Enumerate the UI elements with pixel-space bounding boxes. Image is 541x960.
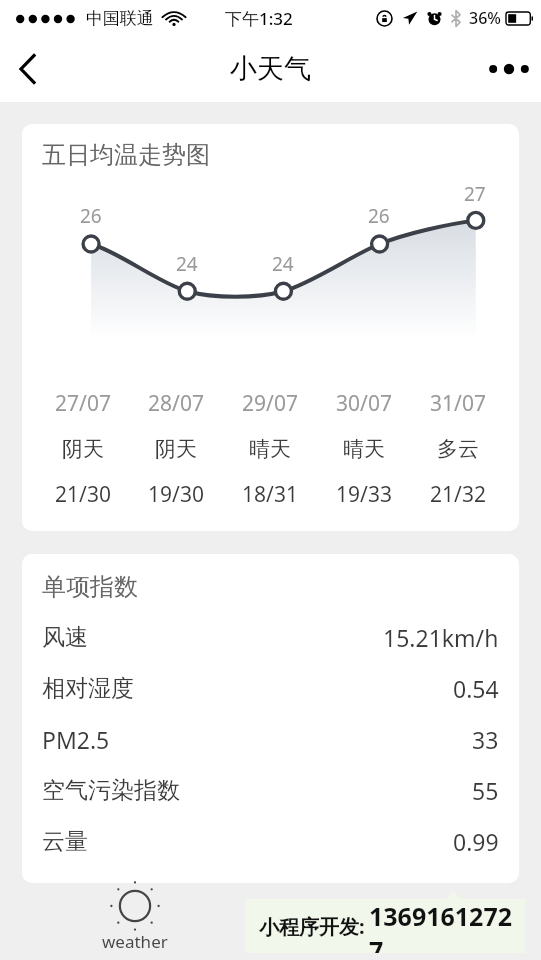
staticText: 30/07 xyxy=(336,389,392,418)
button[interactable]: 五日均温走势图 xyxy=(22,124,519,531)
button[interactable]: 相对湿度 xyxy=(22,663,519,714)
staticText: 26 xyxy=(80,203,102,229)
staticText: 27/07 xyxy=(55,389,111,418)
button[interactable]: PM2.5 xyxy=(22,714,519,765)
staticText: 五日均温走势图 xyxy=(42,140,210,170)
staticText: 晴天 xyxy=(249,436,291,462)
staticText: 55 xyxy=(472,775,499,806)
staticText: 29/07 xyxy=(242,389,298,418)
staticText: 21/32 xyxy=(430,480,486,509)
button[interactable]: 云量 xyxy=(22,816,519,867)
staticText: 小天气 xyxy=(230,52,311,86)
staticText: 空气污染指数 xyxy=(42,776,180,805)
staticText: 24 xyxy=(176,251,198,277)
staticText: 0.54 xyxy=(453,673,499,704)
staticText: 28/07 xyxy=(148,389,204,418)
staticText: 阴天 xyxy=(155,436,197,462)
staticText: 33 xyxy=(472,724,499,755)
staticText: 31/07 xyxy=(430,389,486,418)
staticText: 阴天 xyxy=(62,436,104,462)
staticText: 多云 xyxy=(437,436,479,462)
button[interactable]: 空气污染指数 xyxy=(22,765,519,816)
staticText: 21/30 xyxy=(55,480,111,509)
staticText: 19/33 xyxy=(336,480,392,509)
staticText: 15.21km/h xyxy=(383,622,499,653)
staticText: 24 xyxy=(272,251,294,277)
staticText: 下午1:32 xyxy=(225,7,293,30)
button[interactable]: More options xyxy=(477,37,541,101)
staticText: weather xyxy=(102,930,168,953)
staticText: 0.99 xyxy=(453,826,499,857)
staticText: 26 xyxy=(368,203,390,229)
button[interactable]: Back xyxy=(0,41,56,97)
staticText: 13691612727 xyxy=(369,899,525,953)
staticText: PM2.5 xyxy=(42,724,110,755)
staticText: 风速 xyxy=(42,623,88,652)
staticText: 18/31 xyxy=(242,480,298,509)
staticText: 19/30 xyxy=(148,480,204,509)
staticText: 36% xyxy=(469,7,501,29)
staticText: 相对湿度 xyxy=(42,674,134,703)
staticText: 小程序开发: xyxy=(259,913,365,940)
button[interactable]: 风速 xyxy=(22,612,519,663)
staticText: 晴天 xyxy=(343,436,385,462)
button[interactable]: weather xyxy=(94,882,176,953)
staticText: 27 xyxy=(464,181,486,207)
staticText: 单项指数 xyxy=(42,572,138,602)
staticText: 中国联通 xyxy=(86,8,154,29)
staticText: 云量 xyxy=(42,827,88,856)
